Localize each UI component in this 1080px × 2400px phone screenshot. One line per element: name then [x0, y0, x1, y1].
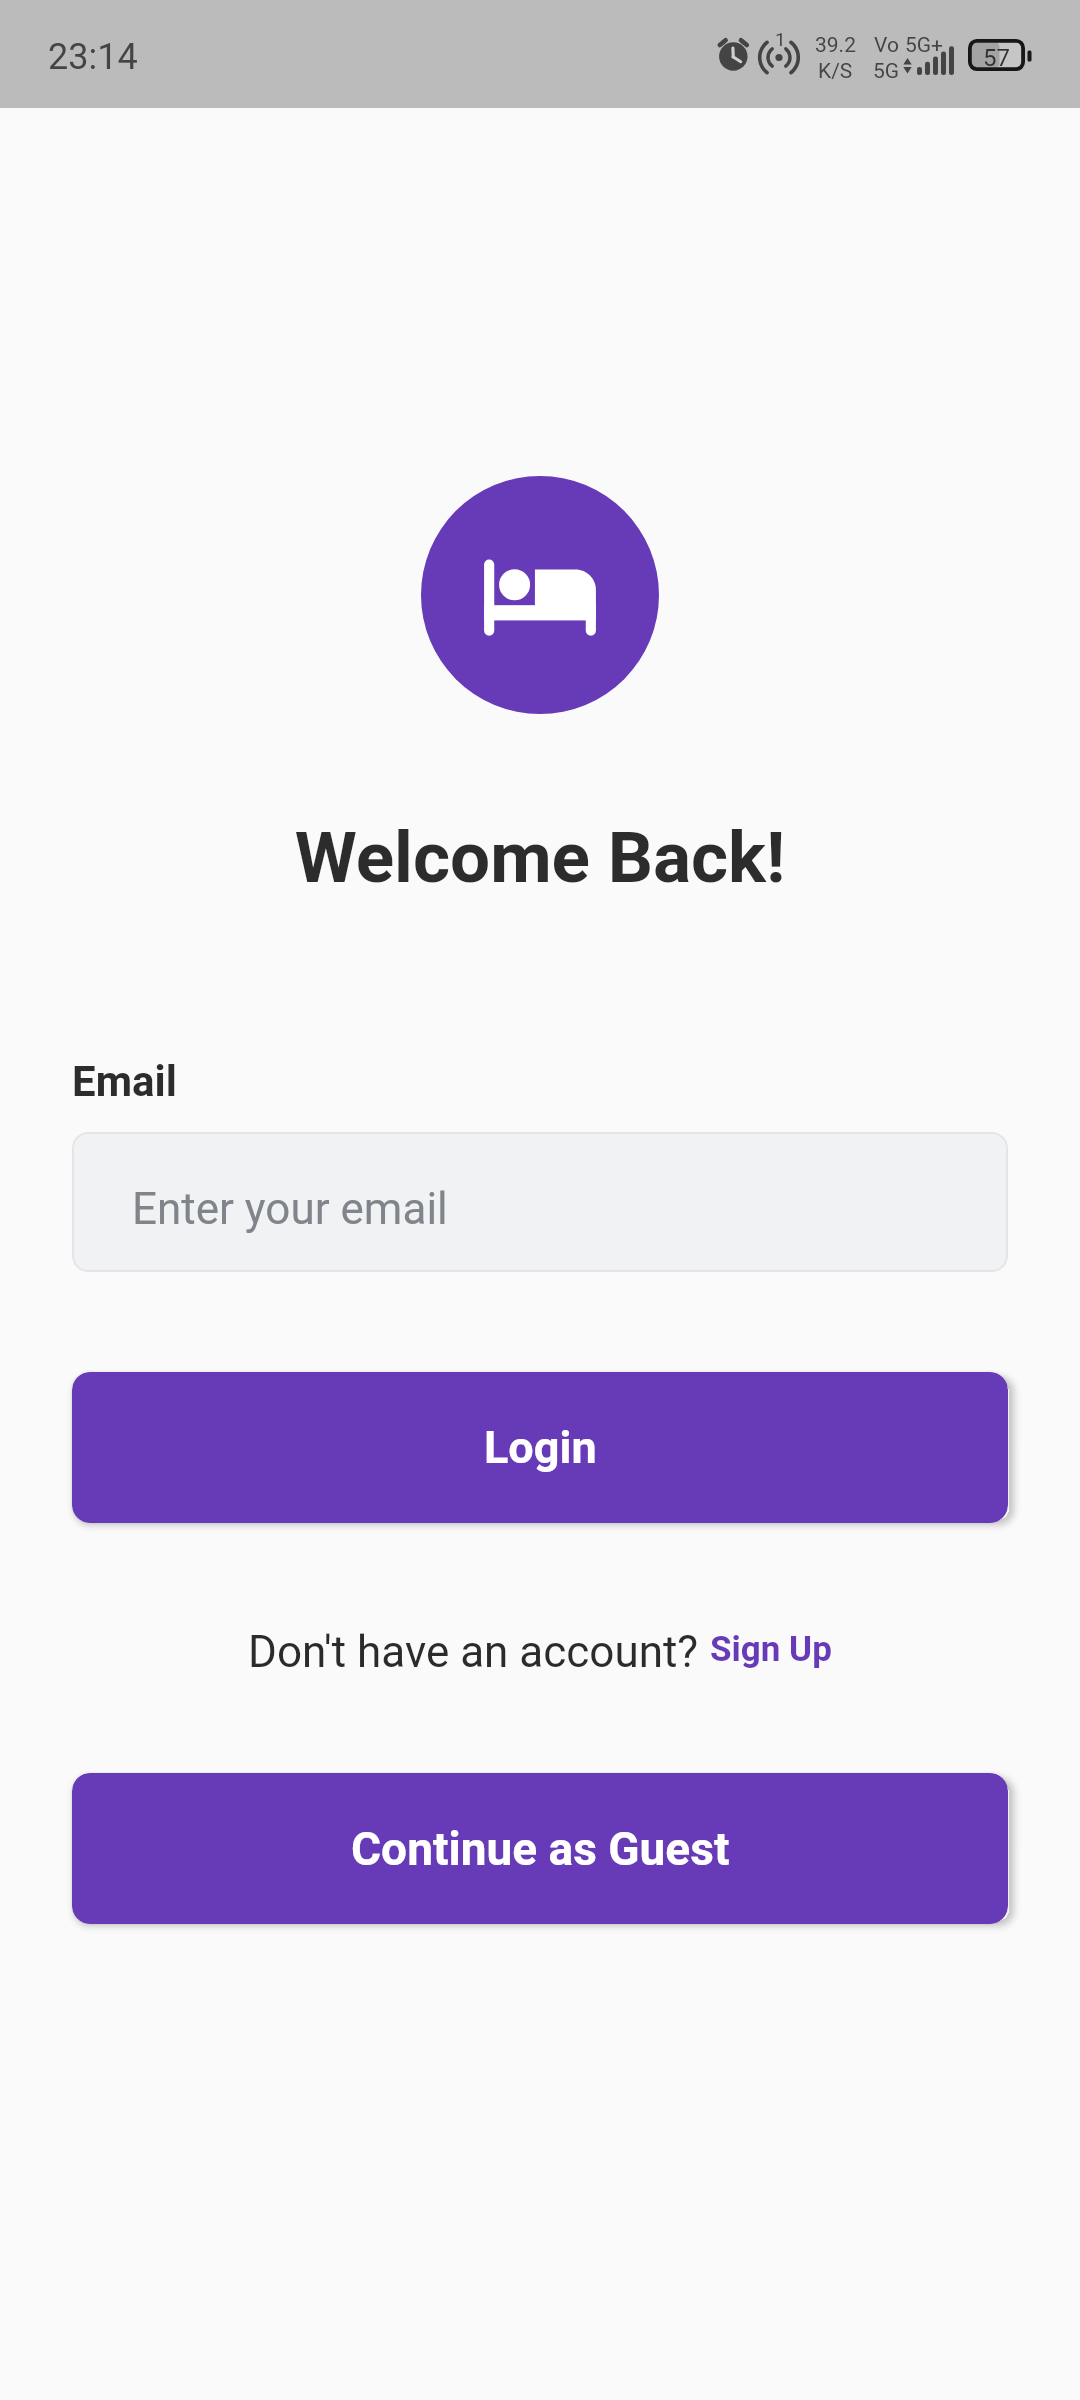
- staticText: Don't have an account?: [248, 1626, 710, 1678]
- staticText: 39.2: [815, 33, 856, 58]
- staticText: K/S: [818, 59, 853, 84]
- staticText: 57: [983, 44, 1010, 72]
- other: Hotel bed: [479, 534, 601, 656]
- staticText: Vo: [874, 33, 899, 58]
- button[interactable]: Continue as Guest: [72, 1773, 1008, 1924]
- staticText: Sign Up: [710, 1629, 832, 1670]
- staticText: Email: [72, 1057, 177, 1106]
- staticText: 5G+: [905, 33, 944, 58]
- staticText: Welcome Back!: [0, 816, 1080, 899]
- staticText: Enter your email: [132, 1183, 448, 1235]
- staticText: 5G: [873, 59, 900, 84]
- staticText: 1: [775, 28, 786, 50]
- button[interactable]: Enter your email: [72, 1132, 1008, 1272]
- button[interactable]: Sign Up: [710, 1629, 832, 1670]
- staticText: Continue as Guest: [351, 1822, 730, 1876]
- staticText: 23:14: [48, 36, 138, 78]
- button[interactable]: Login: [72, 1372, 1008, 1523]
- other: App logo: [421, 476, 659, 714]
- staticText: Login: [484, 1421, 597, 1474]
